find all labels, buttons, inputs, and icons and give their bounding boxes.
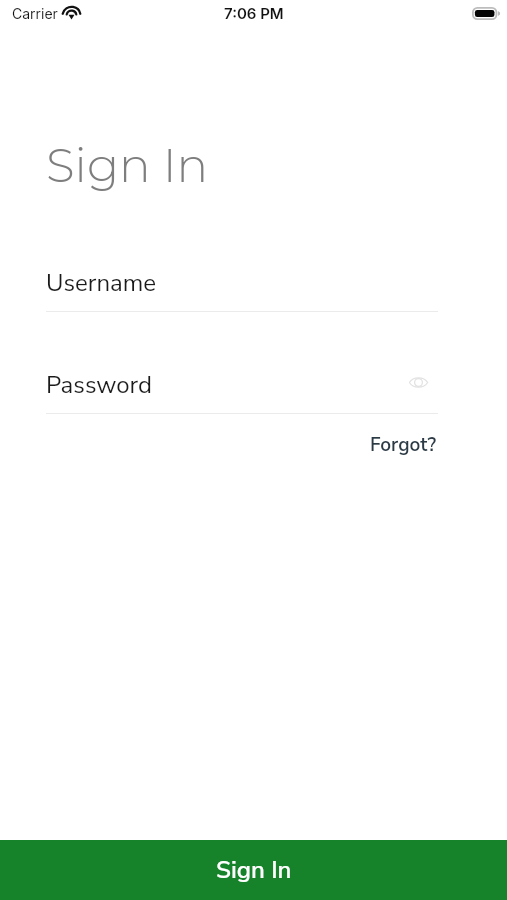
staticText: Forgot?: [370, 432, 437, 458]
button[interactable]: Sign In: [0, 840, 507, 900]
staticText: Carrier: [12, 5, 58, 22]
button[interactable]: Forgot?: [369, 430, 438, 460]
staticText: 7:06 PM: [224, 4, 284, 22]
staticText: Sign In: [216, 854, 292, 887]
staticText: Password: [46, 369, 152, 395]
staticText: Username: [46, 267, 157, 293]
button[interactable]: Show password: [405, 369, 431, 395]
staticText: Sign In: [46, 137, 209, 194]
